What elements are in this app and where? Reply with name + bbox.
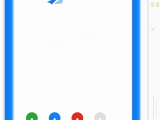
button[interactable]: Video call	[49, 112, 61, 120]
button[interactable]: End call	[71, 112, 83, 120]
button[interactable]: Call	[26, 112, 38, 120]
button[interactable]: More	[94, 112, 106, 120]
